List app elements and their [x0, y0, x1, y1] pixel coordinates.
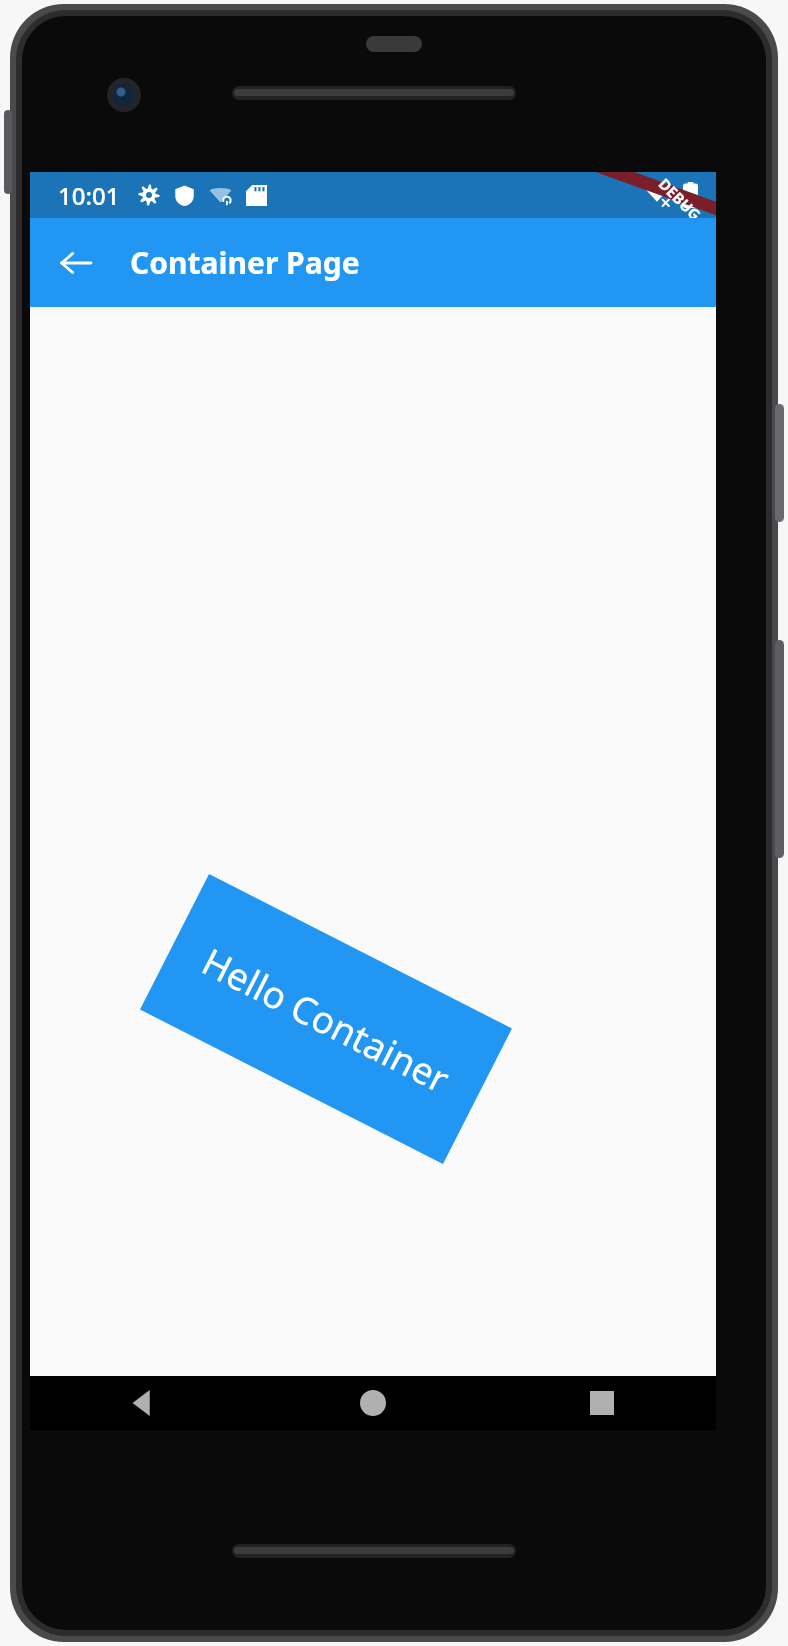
- button[interactable]: Hello Container: [140, 874, 512, 1164]
- button[interactable]: Back: [30, 1376, 258, 1430]
- button[interactable]: Home: [258, 1376, 487, 1430]
- staticText: DEBUG: [654, 173, 705, 218]
- staticText: Hello Container: [194, 935, 459, 1103]
- button[interactable]: Back: [48, 235, 104, 291]
- button[interactable]: Recent apps: [487, 1376, 716, 1430]
- staticText: 10:01: [58, 179, 120, 212]
- staticText: Container Page: [130, 242, 360, 283]
